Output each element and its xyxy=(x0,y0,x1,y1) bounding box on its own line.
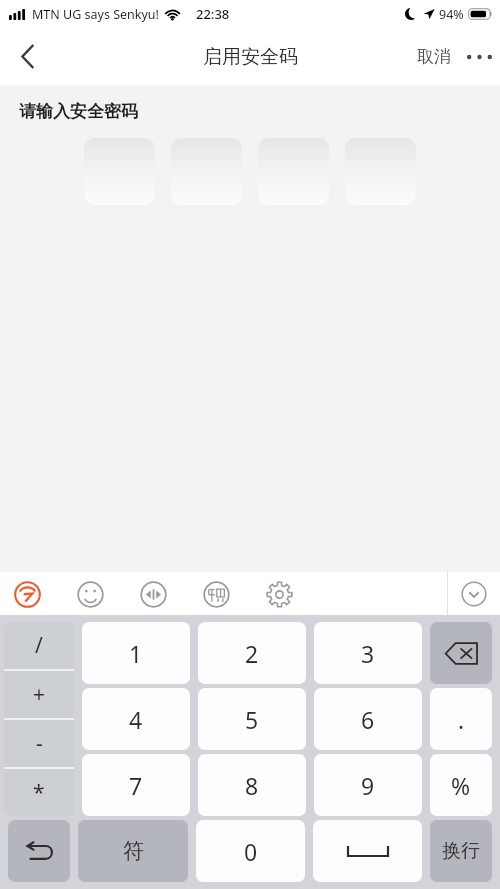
button[interactable]: 0 xyxy=(196,820,305,882)
staticText: 6 xyxy=(361,704,375,735)
staticText: 7 xyxy=(129,770,143,801)
button[interactable]: / xyxy=(4,622,74,669)
button[interactable]: 3 xyxy=(314,622,422,684)
staticText: 取消 xyxy=(417,46,451,67)
staticText: + xyxy=(33,680,46,709)
staticText: * xyxy=(33,778,45,807)
button[interactable]: 2 xyxy=(198,622,306,684)
button[interactable]: 换行 xyxy=(430,820,492,882)
button[interactable]: Security code digit 3 xyxy=(258,138,329,205)
staticText: 3 xyxy=(361,638,375,669)
button[interactable]: 6 xyxy=(314,688,422,750)
button[interactable]: 符 xyxy=(78,820,188,882)
button[interactable]: Security code digit 1 xyxy=(84,138,155,205)
staticText: 4 xyxy=(129,704,143,735)
button[interactable]: Undo xyxy=(8,820,70,882)
button[interactable]: Security code digit 4 xyxy=(345,138,416,205)
staticText: / xyxy=(35,631,43,660)
button[interactable]: More options xyxy=(458,28,500,85)
staticText: 1 xyxy=(129,638,143,669)
button[interactable]: Security code digit 2 xyxy=(171,138,242,205)
button[interactable]: % xyxy=(430,754,492,816)
button[interactable]: . xyxy=(430,688,492,750)
staticText: 启用安全码 xyxy=(203,45,298,69)
button[interactable]: Settings xyxy=(262,577,296,611)
staticText: 94% xyxy=(439,6,464,23)
button[interactable]: 1 xyxy=(82,622,190,684)
staticText: 8 xyxy=(245,770,259,801)
button[interactable]: Move cursor xyxy=(136,577,170,611)
staticText: - xyxy=(36,729,43,758)
staticText: 5 xyxy=(245,704,259,735)
button[interactable]: Back xyxy=(0,28,56,85)
button[interactable]: Hide keyboard xyxy=(448,572,500,615)
staticText: % xyxy=(451,770,471,801)
button[interactable]: Space xyxy=(313,820,422,882)
button[interactable]: 9 xyxy=(314,754,422,816)
staticText: 符 xyxy=(123,838,144,864)
staticText: MTN UG says Senkyu! xyxy=(32,6,159,23)
button[interactable]: 7 xyxy=(82,754,190,816)
staticText: 2 xyxy=(245,638,259,669)
button[interactable]: 4 xyxy=(82,688,190,750)
staticText: 请输入安全密码 xyxy=(19,101,138,122)
staticText: . xyxy=(458,704,465,735)
staticText: 0 xyxy=(244,836,258,867)
button[interactable]: 5 xyxy=(198,688,306,750)
button[interactable]: Backspace xyxy=(430,622,492,684)
button[interactable]: 取消 xyxy=(410,28,458,85)
staticText: 9 xyxy=(361,770,375,801)
button[interactable]: + xyxy=(4,671,74,718)
button[interactable]: Emoji xyxy=(73,577,107,611)
button[interactable]: 8 xyxy=(198,754,306,816)
staticText: 换行 xyxy=(442,839,480,863)
button[interactable]: Skin xyxy=(199,577,233,611)
button[interactable]: Sogou input method xyxy=(10,577,44,611)
button[interactable]: - xyxy=(4,720,74,767)
staticText: 22:38 xyxy=(196,5,230,23)
button[interactable]: * xyxy=(4,769,74,816)
